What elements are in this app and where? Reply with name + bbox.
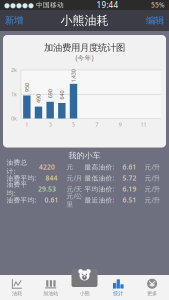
- staticText: 元/月: [66, 174, 82, 182]
- staticText: (今年): [75, 53, 93, 62]
- staticText: 新增: [5, 15, 23, 26]
- staticText: 统计: [113, 290, 123, 297]
- staticText: 最高油价:: [84, 163, 114, 171]
- staticText: 元/天: [66, 185, 82, 193]
- staticText: ●●●●● 中国移动: [4, 1, 64, 9]
- staticText: 元/升: [144, 185, 160, 193]
- staticText: 19:44: [96, 0, 118, 10]
- staticText: 油费平均:: [6, 180, 27, 197]
- staticText: 加油站: [43, 290, 58, 297]
- button[interactable]: 编辑: [141, 10, 169, 31]
- staticText: 1: [25, 121, 28, 128]
- button[interactable]: 新增: [0, 10, 28, 31]
- staticText: 我的小车: [68, 151, 100, 160]
- staticText: 6.19: [122, 185, 136, 193]
- staticText: 2k: [11, 66, 17, 74]
- staticText: 加油费用月度统计图: [44, 42, 125, 53]
- button[interactable]: 更多: [135, 275, 169, 300]
- button[interactable]: 加油站: [34, 275, 68, 300]
- button[interactable]: 油耗: [0, 275, 34, 300]
- staticText: 元/升: [144, 163, 160, 171]
- staticText: 平均油价:: [84, 185, 114, 193]
- button[interactable]: 小熊: [68, 275, 101, 300]
- staticText: 小熊: [79, 290, 89, 297]
- staticText: 油费平均:: [6, 196, 36, 204]
- staticText: 5: [72, 121, 75, 128]
- staticText: 5.72: [122, 174, 136, 182]
- button[interactable]: 统计: [101, 275, 135, 300]
- staticText: 1,430: [67, 72, 80, 79]
- staticText: 3: [49, 121, 52, 128]
- staticText: 950: [22, 84, 31, 91]
- staticText: 1k: [11, 91, 17, 98]
- staticText: 元/公里: [66, 191, 82, 208]
- staticText: 油耗: [12, 290, 22, 297]
- staticText: 更多: [147, 290, 157, 297]
- staticText: 小熊油耗: [60, 13, 108, 28]
- staticText: 元/升: [144, 196, 160, 204]
- staticText: 最近油价:: [84, 196, 114, 204]
- staticText: 最低油价:: [84, 174, 114, 182]
- staticText: 元: [66, 163, 73, 171]
- staticText: 690: [46, 90, 55, 97]
- staticText: 6.51: [122, 196, 136, 204]
- staticText: 元/升: [144, 174, 160, 182]
- staticText: 编辑: [146, 15, 164, 26]
- staticText: 640: [57, 91, 66, 98]
- staticText: 油费平均:: [6, 174, 36, 182]
- staticText: 844: [45, 174, 57, 182]
- staticText: 6.61: [122, 163, 136, 171]
- staticText: 9: [119, 121, 122, 128]
- staticText: 油费总计:: [6, 158, 27, 175]
- staticText: 55%: [151, 1, 165, 9]
- staticText: 0.61: [44, 196, 58, 204]
- staticText: 4220: [39, 163, 55, 171]
- staticText: 490: [34, 95, 43, 102]
- staticText: 11: [140, 121, 146, 128]
- staticText: 29.53: [38, 185, 56, 193]
- staticText: 7: [95, 121, 98, 128]
- staticText: 0k: [11, 115, 17, 122]
